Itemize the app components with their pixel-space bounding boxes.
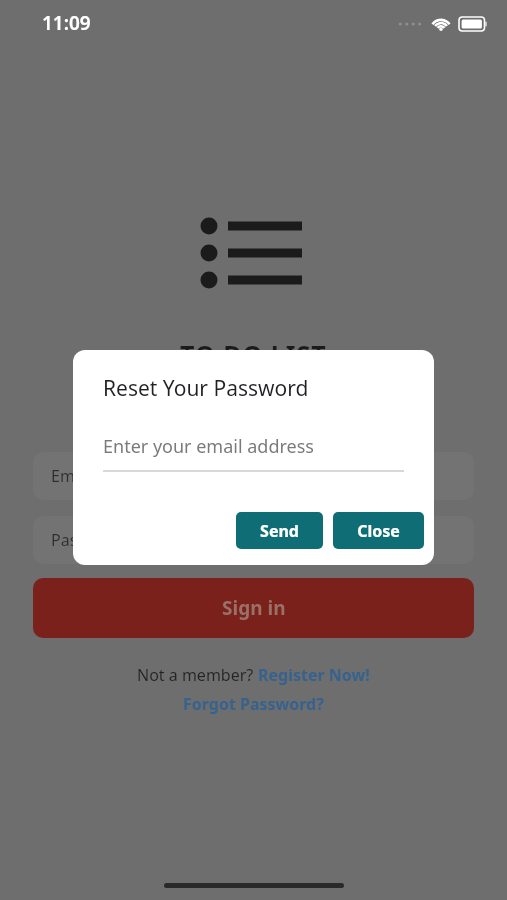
staticText: Email [51,465,93,487]
button[interactable]: Email [33,452,474,500]
staticText: 11:09 [42,10,91,36]
staticText: Send [260,520,299,542]
staticText: Register Now! [258,664,370,686]
button[interactable]: Password [33,516,474,564]
button[interactable]: Forgot Password? [183,693,324,715]
button[interactable]: Close [333,512,424,549]
staticText: TO DO LIST [180,337,327,371]
staticText: Password [51,529,124,551]
staticText: Forgot Password? [183,693,324,715]
staticText: Not a member? [137,664,258,686]
staticText: Close [357,520,400,542]
button[interactable]: Sign in [33,578,474,638]
staticText: Reset Your Password [103,374,309,403]
button[interactable]: Register Now! [258,664,370,686]
staticText: Sign in [222,595,286,621]
staticText: Enter your email address [103,434,314,459]
button[interactable]: Send [236,512,323,549]
